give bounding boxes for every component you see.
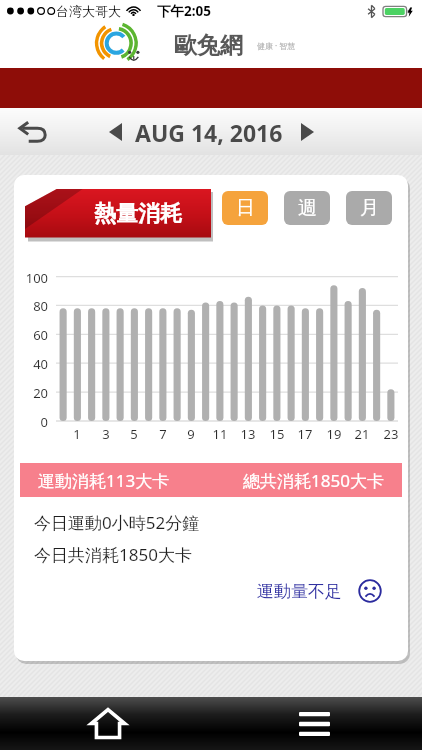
button[interactable]: Menu (286, 697, 342, 750)
staticText: 月 (360, 196, 379, 220)
staticText: 日 (236, 196, 255, 220)
staticText: 今日運動0小時52分鐘 (34, 511, 200, 534)
staticText: 60 (14, 326, 48, 344)
staticText: 下午2:05 (157, 2, 211, 20)
staticText: 總共消耗1850大卡 (243, 469, 384, 492)
staticText: 15 (266, 425, 288, 443)
staticText: 11 (209, 425, 231, 443)
staticText: 9 (180, 425, 202, 443)
staticText: AUG 14, 2016 (135, 117, 283, 148)
staticText: 3 (95, 425, 117, 443)
staticText: 13 (237, 425, 259, 443)
staticText: 今日共消耗1850大卡 (34, 543, 192, 566)
staticText: 週 (298, 196, 317, 220)
button[interactable]: 月 (346, 191, 392, 225)
staticText: 5 (123, 425, 145, 443)
staticText: 1 (66, 425, 88, 443)
staticText: 17 (294, 425, 316, 443)
staticText: 運動量不足 (257, 581, 342, 602)
staticText: 100 (14, 269, 48, 287)
button[interactable]: 週 (284, 191, 330, 225)
button[interactable]: Previous day (99, 116, 131, 148)
button[interactable]: Home (80, 697, 136, 750)
button[interactable]: 熱量消耗 (25, 189, 211, 243)
staticText: 80 (14, 297, 48, 315)
staticText: 19 (323, 425, 345, 443)
staticText: 40 (14, 355, 48, 373)
staticText: 20 (14, 384, 48, 402)
staticText: 21 (351, 425, 373, 443)
staticText: 7 (152, 425, 174, 443)
button[interactable]: Back (10, 110, 54, 154)
staticText: 23 (380, 425, 402, 443)
staticText: 台湾大哥大 (56, 3, 121, 19)
staticText: 運動消耗113大卡 (38, 469, 170, 492)
staticText: 0 (14, 413, 48, 431)
button[interactable]: 日 (222, 191, 268, 225)
staticText: 熱量消耗 (94, 200, 182, 228)
staticText: 健康 · 智慧 (257, 40, 296, 51)
button[interactable]: 運動消耗113大卡 (20, 463, 402, 497)
staticText: 歐兔網 (174, 31, 243, 60)
button[interactable]: Next day (291, 116, 323, 148)
